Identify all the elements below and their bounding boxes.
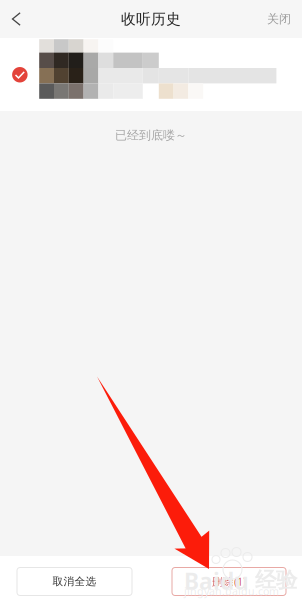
button[interactable]: 关闭 — [256, 0, 302, 38]
staticText: 删除(1) — [212, 574, 246, 589]
staticText: jingyan.baidu.com — [184, 584, 279, 598]
staticText: Baidu — [184, 566, 249, 596]
button[interactable] — [0, 38, 302, 111]
staticText: 经验 — [255, 567, 297, 593]
button[interactable]: 取消全选 — [17, 567, 132, 595]
staticText: 已经到底喽～ — [115, 128, 187, 143]
staticText: 关闭 — [267, 12, 291, 26]
staticText: 取消全选 — [52, 575, 96, 588]
staticText: 收听历史 — [121, 10, 181, 28]
button[interactable]: 返回 — [0, 0, 33, 38]
button[interactable]: 删除(1) — [172, 567, 286, 595]
